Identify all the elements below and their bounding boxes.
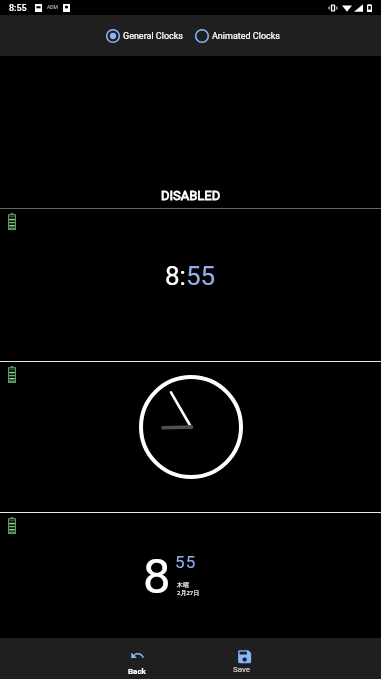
button[interactable]: Back <box>117 647 157 677</box>
staticText: ADM <box>47 4 58 10</box>
staticText: Animated Clocks <box>212 31 280 42</box>
staticText: 8:55 <box>165 261 216 291</box>
button[interactable]: Animated Clocks <box>192 26 283 46</box>
staticText: General Clocks <box>123 31 183 42</box>
staticText: 8 <box>143 548 171 605</box>
other: Save <box>236 648 249 661</box>
other: Back <box>130 648 145 663</box>
button[interactable]: General Clocks <box>103 26 186 46</box>
staticText: 55 <box>175 552 197 572</box>
staticText: Save <box>233 665 251 674</box>
staticText: 木曜 <box>177 581 189 589</box>
button[interactable]: Save <box>222 647 262 675</box>
staticText: 2月27日 <box>177 589 200 597</box>
staticText: DISABLED <box>161 188 221 203</box>
staticText: Back <box>128 667 146 676</box>
staticText: 8:55 <box>9 3 27 14</box>
